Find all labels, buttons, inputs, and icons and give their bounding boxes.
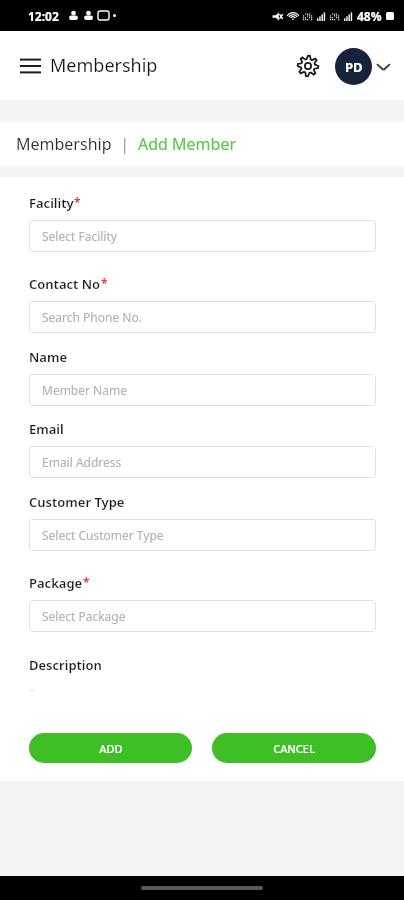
staticText: Member Name <box>42 382 127 398</box>
staticText: Name <box>29 348 67 366</box>
staticText: Search Phone No. <box>42 309 142 325</box>
button[interactable]: Membership <box>16 133 112 155</box>
button[interactable]: Open navigation menu <box>8 44 52 88</box>
staticText: 12:02 <box>28 8 59 24</box>
button[interactable]: Settings <box>287 45 329 87</box>
staticText: * <box>74 194 81 210</box>
staticText: Select Facility <box>42 228 117 244</box>
staticText: PD <box>345 58 363 76</box>
staticText: Email Address <box>42 454 122 470</box>
button[interactable]: ADD <box>29 733 192 763</box>
staticText: Customer Type <box>29 493 125 511</box>
button[interactable]: Email Address <box>29 446 376 478</box>
button[interactable]: Select Customer Type <box>29 519 376 551</box>
staticText: Contact No <box>29 275 101 293</box>
button[interactable]: CANCEL <box>212 733 376 763</box>
staticText: Membership <box>50 53 158 78</box>
staticText: Email <box>29 420 64 438</box>
staticText: Select Customer Type <box>42 527 164 543</box>
staticText: * <box>101 275 108 291</box>
staticText: CANCEL <box>273 741 315 756</box>
staticText: ADD <box>99 741 123 756</box>
staticText: Facility <box>29 194 74 212</box>
button[interactable]: Select Facility <box>29 220 376 252</box>
staticText: Description <box>29 656 102 674</box>
button[interactable]: Add Member <box>138 133 237 155</box>
staticText: Select Package <box>42 608 126 624</box>
staticText: | <box>112 133 138 155</box>
button[interactable]: Member Name <box>29 374 376 406</box>
staticText: Package <box>29 574 83 592</box>
staticText: * <box>83 574 90 590</box>
staticText: 48% <box>357 8 382 24</box>
staticText: ... <box>29 684 35 694</box>
button[interactable]: Search Phone No. <box>29 301 376 333</box>
button[interactable]: Select Package <box>29 600 376 632</box>
button[interactable]: PD <box>335 48 392 85</box>
